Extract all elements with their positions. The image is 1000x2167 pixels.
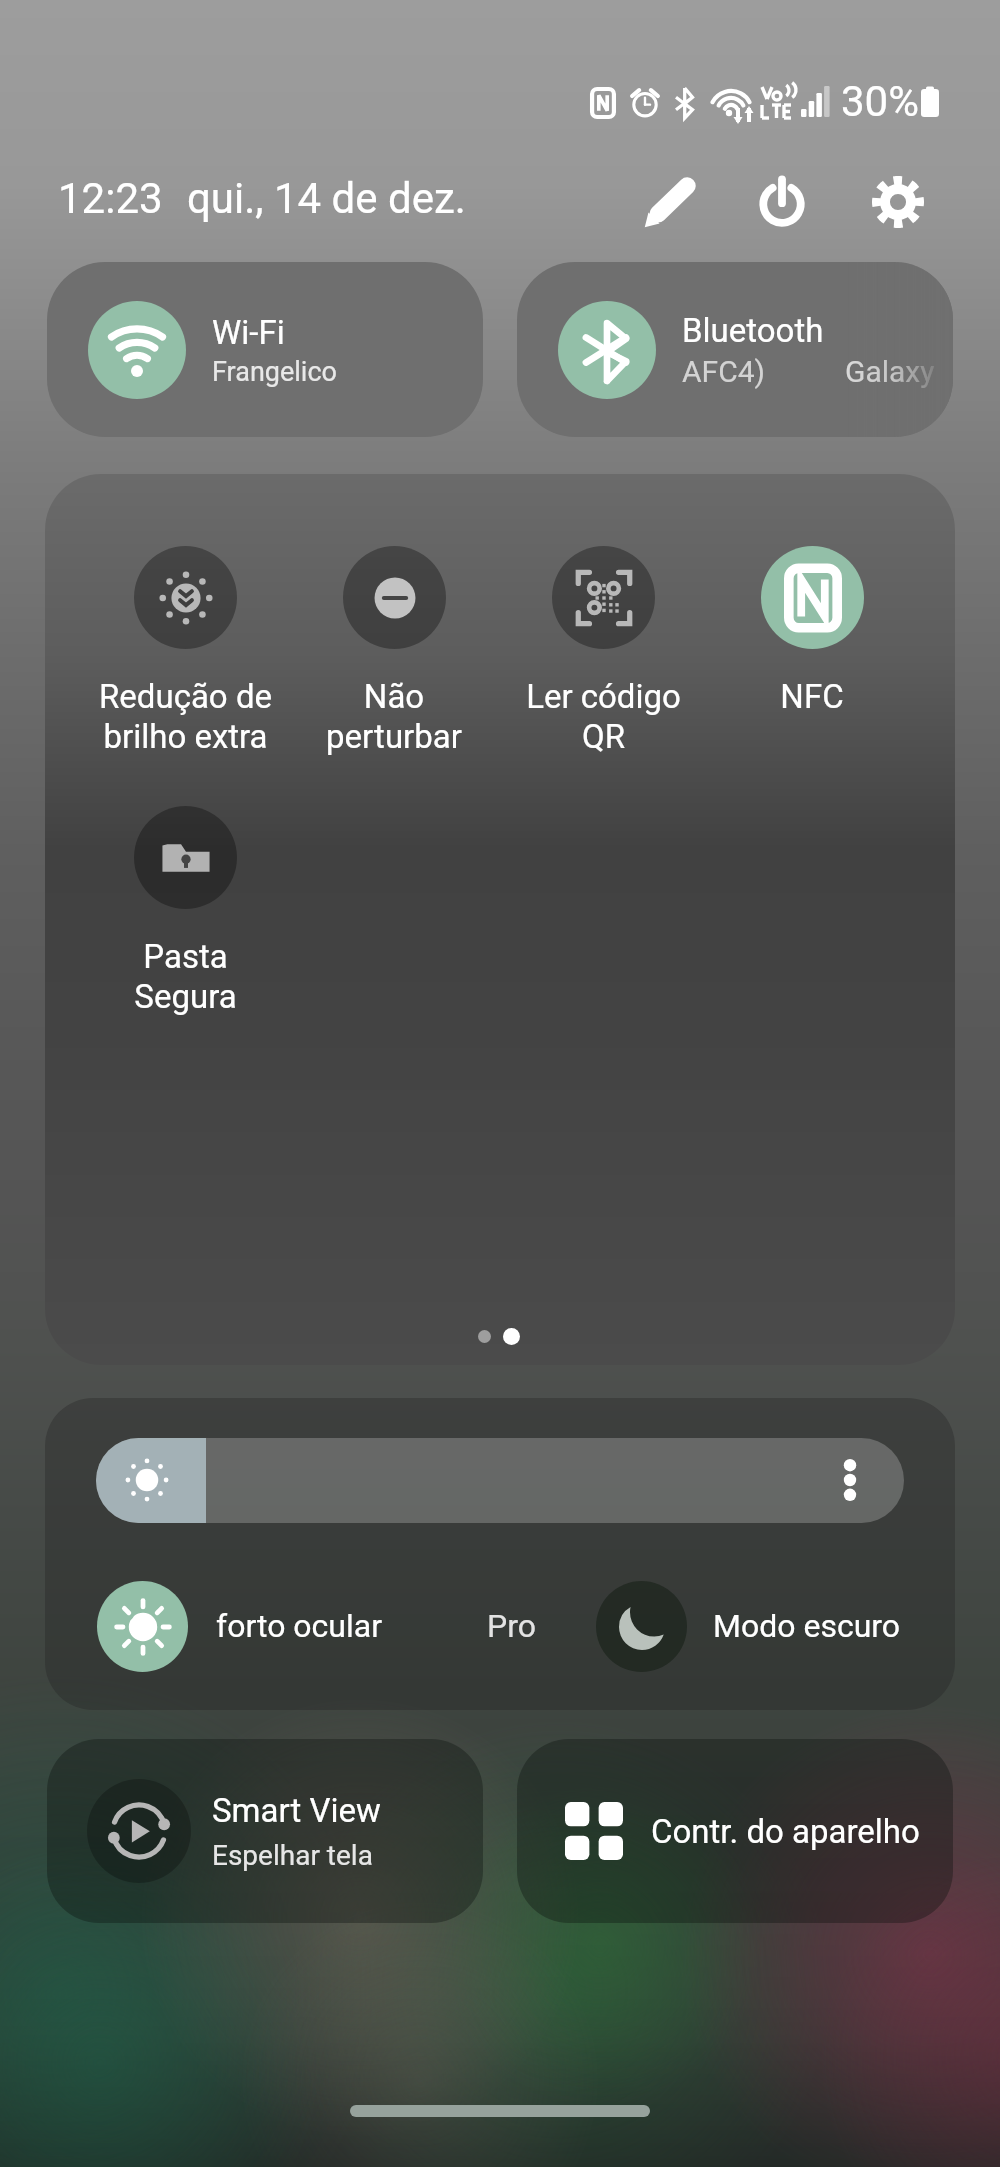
staticText: 30% (841, 77, 919, 126)
staticText: Contr. do aparelho (651, 1812, 920, 1851)
button[interactable]: Settings (864, 168, 932, 236)
staticText: Smart View (212, 1791, 381, 1830)
staticText: Redução de brilho extra (99, 677, 272, 756)
staticText: Modo escuro (713, 1607, 901, 1645)
staticText: qui., 14 de dez. (187, 174, 466, 223)
button[interactable]: Edit (636, 168, 704, 236)
staticText: Ler código QR (526, 677, 681, 756)
staticText: Frangelico (212, 356, 337, 388)
button[interactable]: Brightness (96, 1438, 904, 1523)
button[interactable]: Pasta Segura (81, 806, 289, 1036)
button[interactable]: Contr. do aparelho (517, 1739, 953, 1923)
staticText: Wi-Fi (212, 313, 285, 352)
button[interactable]: Eye comfort shield (97, 1581, 188, 1672)
button[interactable]: Não perturbar (290, 546, 498, 776)
staticText: forto ocular (216, 1607, 383, 1645)
staticText: Não perturbar (326, 677, 462, 756)
staticText: Pasta Segura (134, 937, 237, 1016)
button[interactable]: NFC (708, 546, 916, 776)
button[interactable]: Wi-Fi (47, 262, 483, 437)
staticText: NFC (780, 677, 844, 716)
staticText: Bluetooth (682, 311, 824, 350)
button[interactable]: Power (748, 168, 816, 236)
staticText: 12:23 (58, 174, 163, 223)
button[interactable]: Ler código QR (499, 546, 707, 776)
button[interactable]: Smart View (47, 1739, 483, 1923)
staticText: Espelhar tela (212, 1839, 373, 1872)
button[interactable]: Dark mode (596, 1581, 687, 1672)
button[interactable]: Bluetooth (517, 262, 953, 437)
staticText: Pro (487, 1607, 536, 1645)
button[interactable]: Redução de brilho extra (81, 546, 289, 776)
staticText: Galaxy (845, 354, 935, 389)
staticText: AFC4) (682, 354, 765, 389)
